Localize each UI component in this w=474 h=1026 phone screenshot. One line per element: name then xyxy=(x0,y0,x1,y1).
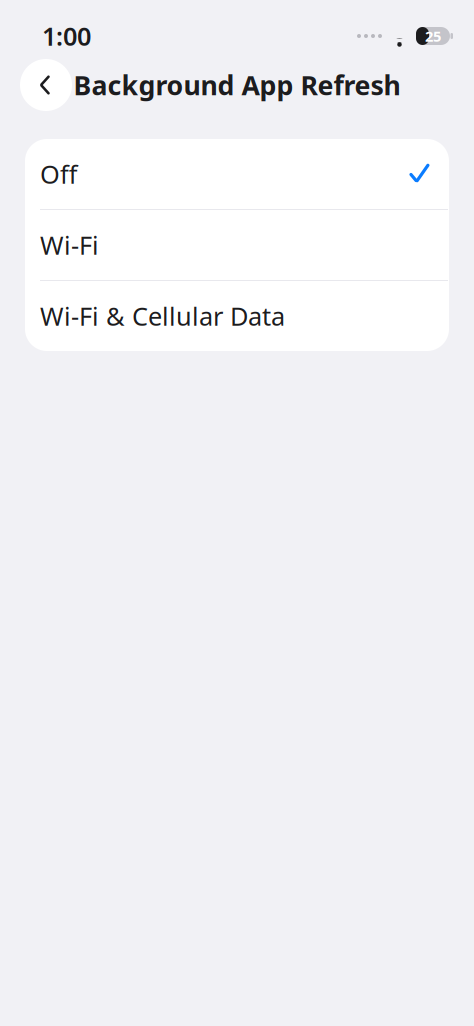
staticText: Background App Refresh xyxy=(73,67,400,103)
button[interactable]: Wi-Fi xyxy=(25,210,449,280)
staticText: 1:00 xyxy=(42,19,91,53)
staticText: Wi-Fi xyxy=(40,228,99,262)
staticText: Off xyxy=(40,157,77,191)
button[interactable]: Back xyxy=(20,59,72,111)
staticText: 25 xyxy=(425,26,441,46)
button[interactable]: Off xyxy=(25,139,449,209)
button[interactable]: Wi-Fi & Cellular Data xyxy=(25,281,449,351)
staticText: Wi-Fi & Cellular Data xyxy=(40,299,285,333)
